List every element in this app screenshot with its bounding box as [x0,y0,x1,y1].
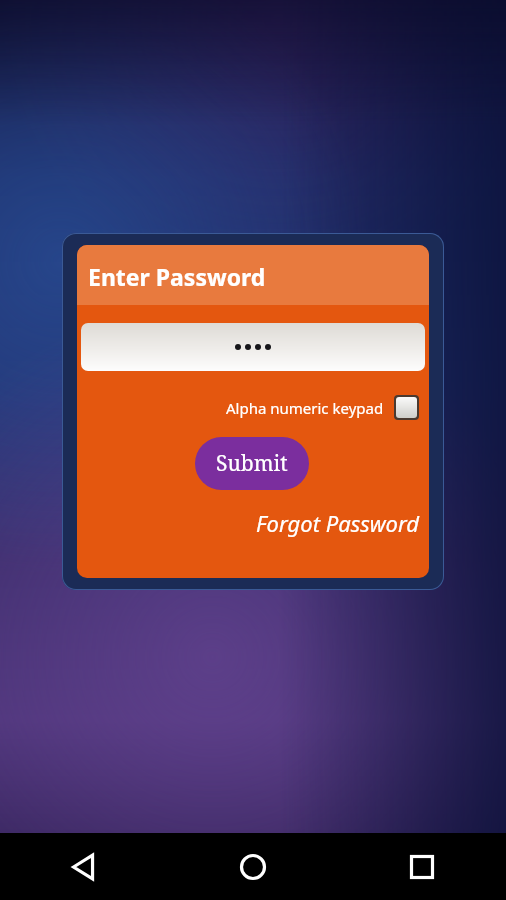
button[interactable] [81,323,425,371]
button[interactable]: Recents [337,833,506,900]
staticText: Alpha numeric keypad [226,398,384,418]
button[interactable]: Alpha numeric keypad [226,395,419,420]
button[interactable]: Forgot Password [256,508,419,538]
button[interactable]: Home [168,833,337,900]
staticText: Submit [216,449,288,478]
button[interactable]: Back [0,833,168,900]
staticText: Enter Password [88,261,266,292]
button[interactable]: Submit [195,437,309,490]
